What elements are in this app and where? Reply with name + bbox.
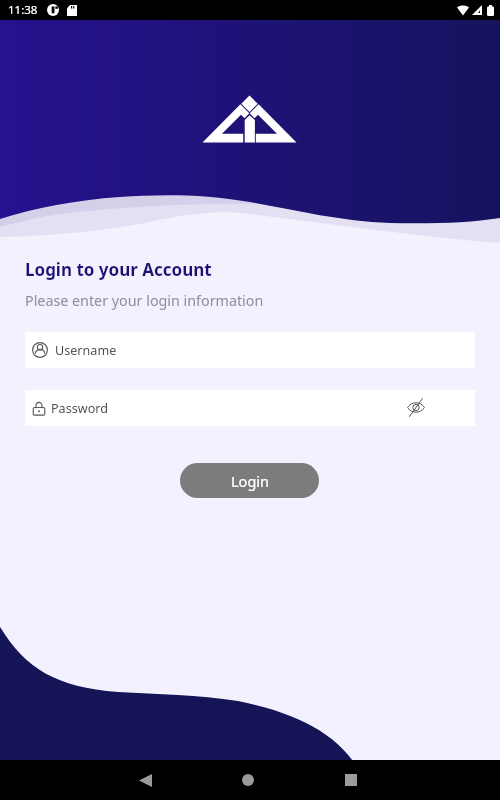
button[interactable]: Username — [25, 332, 475, 368]
button[interactable]: Back — [95, 760, 195, 800]
button[interactable]: Recent apps — [301, 760, 401, 800]
button[interactable]: Show password — [405, 397, 427, 418]
staticText: 11:38 — [8, 2, 38, 18]
staticText: Password — [51, 400, 108, 417]
staticText: Please enter your login information — [25, 291, 264, 310]
staticText: Username — [55, 342, 117, 359]
button[interactable]: Login — [180, 463, 319, 498]
staticText: Login — [231, 471, 269, 491]
button[interactable]: Home — [195, 760, 301, 800]
button[interactable]: Password — [25, 390, 475, 426]
staticText: Login to your Account — [25, 258, 212, 281]
